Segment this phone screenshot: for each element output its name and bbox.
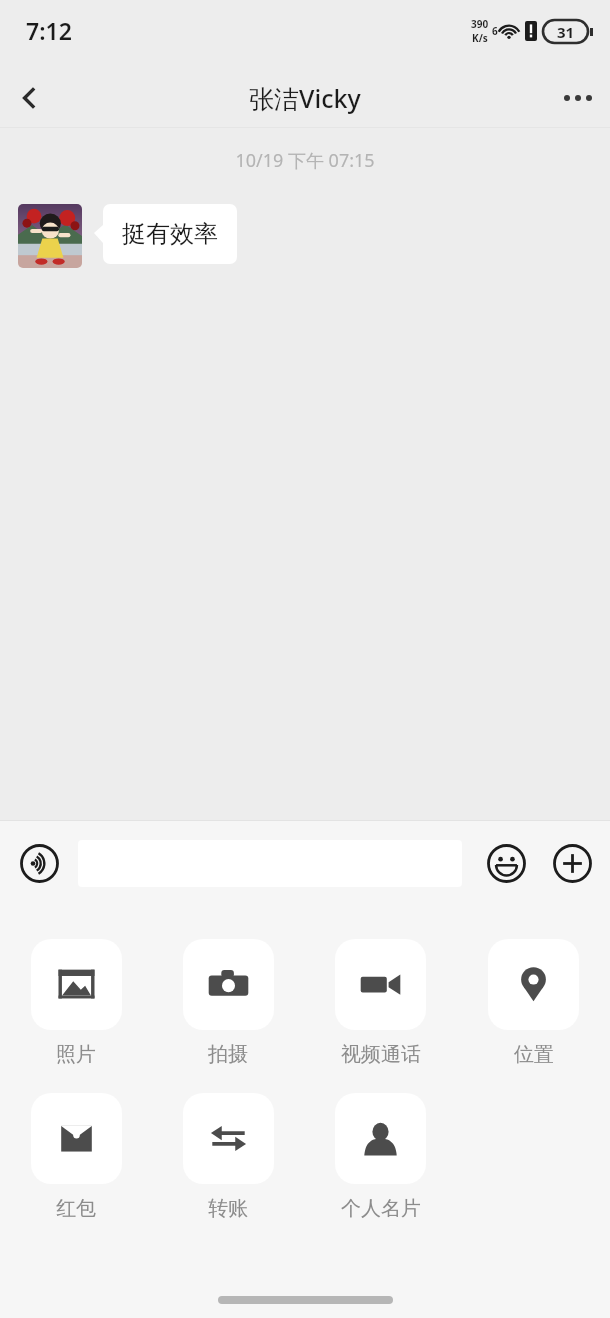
- staticText: 6: [492, 24, 498, 38]
- button[interactable]: 个人名片: [304, 1093, 457, 1221]
- staticText: K/s: [472, 31, 488, 45]
- button[interactable]: 转账: [152, 1093, 304, 1221]
- button[interactable]: More options: [546, 67, 610, 128]
- button[interactable]: 照片: [0, 939, 152, 1067]
- button[interactable]: 位置: [457, 939, 610, 1067]
- staticText: 视频通话: [341, 1042, 421, 1067]
- staticText: 390: [471, 17, 489, 31]
- staticText: 10/19 下午 07:15: [0, 148, 610, 173]
- staticText: 31: [557, 22, 575, 42]
- button[interactable]: 红包: [0, 1093, 152, 1221]
- staticText: 转账: [208, 1196, 248, 1221]
- button[interactable]: Back: [0, 68, 60, 128]
- button[interactable]: 挺有效率: [103, 204, 237, 264]
- button[interactable]: Emoji: [486, 843, 526, 883]
- button[interactable]: Voice message: [19, 843, 59, 883]
- staticText: 位置: [514, 1042, 554, 1067]
- staticText: 个人名片: [341, 1196, 421, 1221]
- button[interactable]: 拍摄: [152, 939, 304, 1067]
- staticText: 红包: [56, 1196, 96, 1221]
- staticText: 张洁Vicky: [249, 81, 361, 115]
- staticText: 7:12: [26, 15, 72, 46]
- staticText: 挺有效率: [122, 219, 218, 249]
- staticText: 拍摄: [208, 1042, 248, 1067]
- button[interactable]: Contact avatar: [18, 204, 82, 268]
- button[interactable]: 视频通话: [304, 939, 457, 1067]
- button[interactable]: More functions: [552, 843, 592, 883]
- staticText: 照片: [56, 1042, 96, 1067]
